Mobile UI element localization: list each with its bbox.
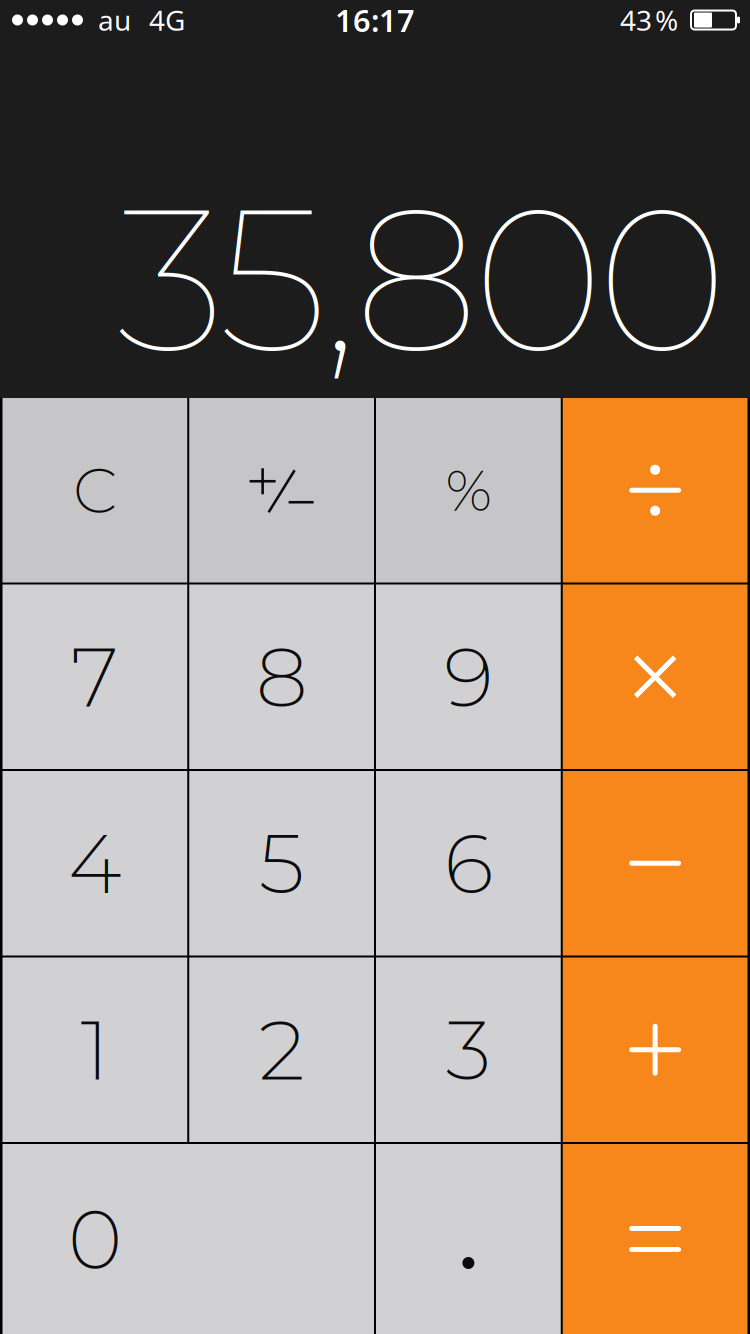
button[interactable]: Multiply bbox=[563, 584, 748, 769]
staticText: % bbox=[655, 1, 678, 39]
button[interactable]: Divide bbox=[563, 398, 748, 582]
staticText: 7 bbox=[71, 626, 119, 727]
staticText: % bbox=[445, 455, 491, 525]
staticText: 4 bbox=[68, 813, 122, 914]
staticText: 0 bbox=[68, 1189, 122, 1289]
button[interactable]: 5 bbox=[189, 771, 374, 955]
staticText: au bbox=[98, 1, 131, 39]
button[interactable]: % bbox=[376, 398, 561, 582]
button[interactable]: 1 bbox=[2, 957, 187, 1142]
button[interactable]: 8 bbox=[189, 584, 374, 769]
button[interactable]: 7 bbox=[2, 584, 187, 769]
staticText: 8 bbox=[256, 626, 308, 727]
staticText: 1 bbox=[80, 999, 109, 1100]
staticText: 43 bbox=[620, 1, 652, 39]
staticText: 4G bbox=[149, 1, 185, 39]
staticText: 35,800 bbox=[116, 157, 727, 401]
staticText: 3 bbox=[445, 999, 491, 1100]
button[interactable]: Plus minus bbox=[189, 398, 374, 582]
staticText: 16:17 bbox=[335, 0, 415, 40]
staticText: 6 bbox=[444, 813, 493, 914]
button[interactable]: Minus bbox=[563, 771, 748, 955]
button[interactable]: 6 bbox=[376, 771, 561, 955]
staticText: C bbox=[73, 452, 117, 528]
button[interactable]: 2 bbox=[189, 957, 374, 1142]
button[interactable]: 3 bbox=[376, 957, 561, 1142]
button[interactable]: 9 bbox=[376, 584, 561, 769]
button[interactable]: 0 bbox=[2, 1144, 374, 1334]
staticText: 5 bbox=[259, 813, 305, 914]
button[interactable]: 4 bbox=[2, 771, 187, 955]
staticText: 9 bbox=[444, 626, 493, 727]
button[interactable]: Equals bbox=[563, 1144, 748, 1334]
staticText: 2 bbox=[259, 999, 305, 1100]
button[interactable]: C bbox=[2, 398, 187, 582]
button[interactable]: Decimal point bbox=[376, 1144, 561, 1334]
button[interactable]: Plus bbox=[563, 957, 748, 1142]
